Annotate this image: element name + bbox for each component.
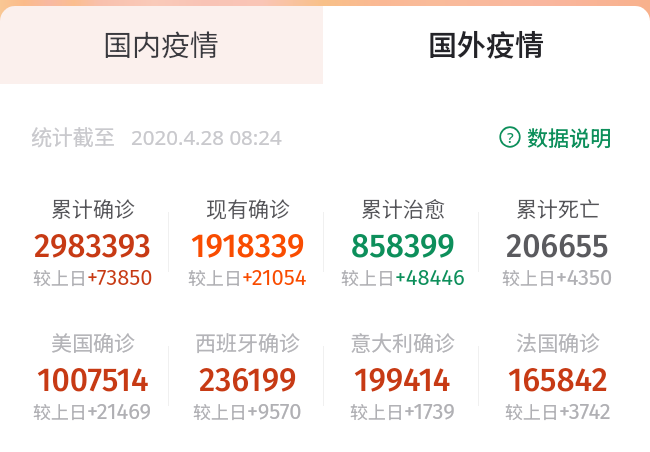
staticText: 较上日+48446 bbox=[341, 264, 465, 291]
staticText: 较上日+1739 bbox=[350, 398, 455, 425]
staticText: 较上日+73850 bbox=[33, 264, 153, 291]
staticText: 数据说明 bbox=[527, 122, 611, 152]
button[interactable]: 西班牙确诊 bbox=[170, 327, 325, 426]
staticText: ? bbox=[507, 127, 514, 147]
staticText: 199414 bbox=[354, 361, 451, 399]
staticText: 较上日+3742 bbox=[505, 398, 611, 425]
staticText: 累计确诊 bbox=[51, 193, 135, 223]
staticText: 较上日+9570 bbox=[193, 398, 302, 425]
staticText: 西班牙确诊 bbox=[195, 327, 300, 357]
staticText: 858399 bbox=[351, 227, 455, 265]
button[interactable]: 意大利确诊 bbox=[325, 327, 480, 426]
staticText: 美国确诊 bbox=[51, 327, 135, 357]
button[interactable]: 累计确诊 bbox=[15, 193, 170, 292]
staticText: 1007514 bbox=[37, 361, 149, 399]
staticText: 较上日+21469 bbox=[33, 398, 152, 425]
button[interactable]: 数据说明 bbox=[499, 122, 611, 152]
button[interactable]: 国外疫情 bbox=[323, 6, 650, 84]
staticText: 累计死亡 bbox=[516, 193, 600, 223]
staticText: 国内疫情 bbox=[103, 22, 220, 64]
staticText: 较上日+21054 bbox=[188, 264, 307, 291]
staticText: 1918339 bbox=[191, 227, 305, 265]
button[interactable]: 法国确诊 bbox=[480, 327, 635, 426]
button[interactable]: 美国确诊 bbox=[15, 327, 170, 426]
staticText: 法国确诊 bbox=[516, 327, 600, 357]
staticText: 206655 bbox=[506, 227, 609, 265]
staticText: 国外疫情 bbox=[428, 22, 545, 64]
staticText: 现有确诊 bbox=[206, 193, 290, 223]
staticText: 累计治愈 bbox=[361, 193, 445, 223]
staticText: 2983393 bbox=[34, 227, 151, 265]
button[interactable]: 国内疫情 bbox=[0, 6, 323, 84]
staticText: 统计截至 2020.4.28 08:24 bbox=[31, 121, 282, 151]
staticText: 意大利确诊 bbox=[350, 327, 455, 357]
staticText: 165842 bbox=[508, 361, 608, 399]
other: 数据说明 bbox=[499, 126, 521, 148]
staticText: 较上日+4350 bbox=[502, 264, 613, 291]
button[interactable]: 累计治愈 bbox=[325, 193, 480, 292]
staticText: 236199 bbox=[199, 361, 297, 399]
button[interactable]: 累计死亡 bbox=[480, 193, 635, 292]
button[interactable]: 现有确诊 bbox=[170, 193, 325, 292]
